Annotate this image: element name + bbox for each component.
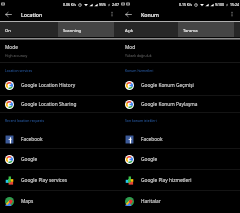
staticText: Konum <box>141 11 159 18</box>
button[interactable]: Facebook <box>0 129 120 149</box>
staticText: Mod <box>125 44 136 51</box>
button[interactable]: Tarama <box>178 22 234 37</box>
staticText: Maps <box>21 198 34 205</box>
staticText: Google Konum Geçmişi <box>141 82 194 89</box>
staticText: On <box>5 28 11 34</box>
staticText: Scanning <box>63 28 82 34</box>
button[interactable]: Google Play hizmetleri <box>120 170 240 191</box>
button[interactable]: More options <box>106 8 118 20</box>
staticText: Haritalar <box>141 198 161 205</box>
button[interactable]: Google <box>120 149 240 170</box>
button[interactable]: Navigate up <box>2 8 14 20</box>
staticText: 0.15 K/s <box>179 2 192 7</box>
staticText: Açık <box>125 28 134 34</box>
staticText: Mode <box>5 44 18 51</box>
staticText: 15:24 <box>230 2 239 7</box>
staticText: 0.06 K/s <box>63 2 76 7</box>
button[interactable]: Scanning <box>58 22 114 37</box>
staticText: Google <box>141 156 158 163</box>
staticText: %100 <box>215 2 224 7</box>
staticText: Google <box>21 156 38 163</box>
button[interactable]: Google <box>0 149 120 170</box>
staticText: Google Play services <box>21 177 67 184</box>
staticText: Google Location History <box>21 82 76 89</box>
button[interactable]: Google Location History <box>0 75 120 96</box>
staticText: Location services <box>5 68 120 73</box>
staticText: Tarama <box>183 28 198 34</box>
button[interactable]: Mode <box>0 40 120 62</box>
staticText: Location <box>21 11 43 18</box>
staticText: Recent location requests <box>5 118 120 123</box>
button[interactable]: Google Konum Geçmişi <box>120 75 240 96</box>
button[interactable]: Maps <box>0 191 120 212</box>
button[interactable]: Google Konum Paylaşma <box>120 96 240 113</box>
staticText: Google Konum Paylaşma <box>141 101 198 108</box>
staticText: 2:07 <box>112 2 119 7</box>
staticText: Yüksek doğruluk <box>125 53 152 58</box>
staticText: Google Location Sharing <box>21 101 77 108</box>
button[interactable]: Google Location Sharing <box>0 96 120 113</box>
staticText: Son konum istekleri <box>125 118 240 123</box>
staticText: Konum hizmetleri <box>125 68 240 73</box>
staticText: 95% <box>99 2 106 7</box>
button[interactable]: Navigate up <box>122 8 134 20</box>
staticText: Facebook <box>21 136 43 143</box>
staticText: High accuracy <box>5 53 28 58</box>
button[interactable]: Google Play services <box>0 170 120 191</box>
button[interactable]: Mod <box>120 40 240 62</box>
button[interactable]: Facebook <box>120 129 240 149</box>
staticText: Google Play hizmetleri <box>141 177 192 184</box>
button[interactable]: Haritalar <box>120 191 240 212</box>
button[interactable]: More options <box>226 8 238 20</box>
staticText: Facebook <box>141 136 163 143</box>
